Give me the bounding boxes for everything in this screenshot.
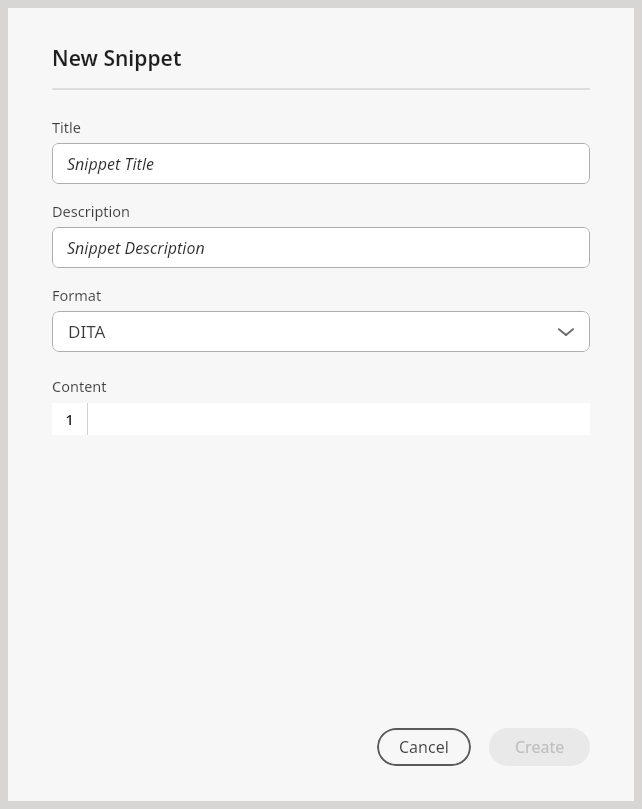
staticText: Snippet Title (67, 153, 155, 175)
button[interactable]: Create (489, 728, 590, 766)
staticText: New Snippet (52, 44, 182, 73)
button[interactable]: Content code editor (52, 403, 590, 435)
staticText: DITA (68, 320, 106, 343)
staticText: 1 (65, 410, 74, 429)
button[interactable]: Cancel (377, 728, 471, 766)
button[interactable]: Snippet Description (52, 227, 590, 268)
staticText: Content (52, 376, 107, 396)
staticText: Format (52, 285, 102, 305)
staticText: Create (515, 736, 565, 758)
staticText: Title (52, 117, 81, 137)
staticText: Description (52, 201, 131, 221)
button[interactable]: Format: DITA, open dropdown (52, 311, 590, 352)
staticText: Cancel (399, 736, 449, 758)
staticText: Snippet Description (67, 237, 205, 259)
button[interactable]: Snippet Title (52, 143, 590, 184)
